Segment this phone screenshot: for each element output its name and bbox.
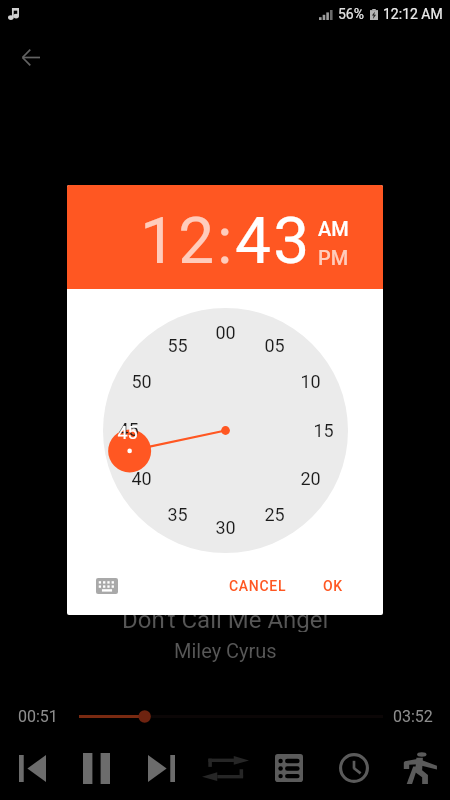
staticText: OK [323,578,343,594]
staticText: 25 [264,504,285,525]
staticText: Miley Cyrus [174,639,277,662]
staticText: 43 [235,204,312,279]
button[interactable]: Next [132,738,190,798]
button[interactable]: PM [318,246,349,269]
staticText: CANCEL [229,578,287,594]
button[interactable]: Pause [67,738,125,798]
staticText: 00 [215,322,236,343]
button[interactable]: Switch to keyboard input [90,569,124,603]
staticText: 35 [167,504,188,525]
staticText: 05 [264,335,285,356]
button[interactable]: Select hour [140,204,217,279]
button[interactable]: Playlist [260,738,318,798]
staticText: AM [318,217,349,240]
button[interactable]: CANCEL [219,569,297,603]
button[interactable]: Seek bar [79,703,383,729]
staticText: 50 [131,371,152,392]
staticText: 55 [167,335,188,356]
staticText: 12 [140,204,217,279]
staticText: 40 [131,468,152,489]
staticText: 45 [117,422,138,443]
button[interactable]: Previous [3,738,61,798]
button[interactable]: Back [11,38,50,77]
button[interactable]: Repeat [196,738,254,798]
button[interactable]: Select minute [235,204,312,279]
button[interactable]: AM [318,217,349,240]
staticText: 30 [215,517,236,538]
staticText: : [217,204,235,279]
staticText: 15 [313,420,334,441]
staticText: 45 [118,419,139,440]
button[interactable]: Walking mode [391,738,449,798]
staticText: 00:51 [18,707,58,726]
staticText: Don't Call Me Angel [122,606,329,632]
staticText: 03:52 [393,707,433,726]
button[interactable]: Sleep timer [325,738,383,798]
staticText: 20 [300,468,321,489]
button[interactable]: OK [313,569,353,603]
staticText: 56% [338,6,364,22]
staticText: 12:12 AM [383,6,443,22]
staticText: PM [318,246,349,269]
staticText: 10 [300,371,321,392]
